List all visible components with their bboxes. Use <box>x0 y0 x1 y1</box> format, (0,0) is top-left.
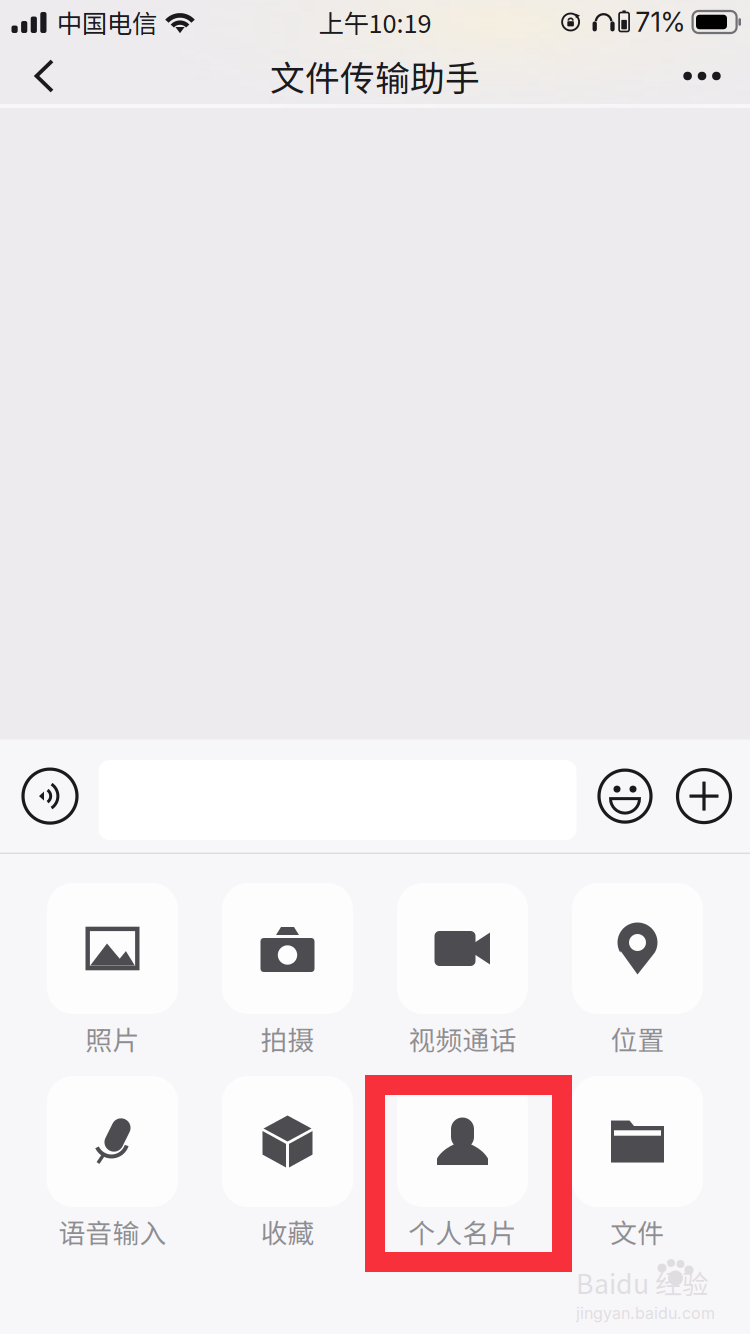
button[interactable]: 位置 <box>550 883 725 1052</box>
button[interactable]: 拍摄 <box>200 883 375 1052</box>
button[interactable]: 语音输入 <box>1 740 76 853</box>
staticText: 拍摄 <box>260 1019 314 1058</box>
staticText: Baidu 经验 <box>576 1263 709 1302</box>
button[interactable]: 文件 <box>550 1076 725 1245</box>
button[interactable]: 照片 <box>25 883 200 1052</box>
staticText: 文件 <box>610 1212 664 1251</box>
staticText: 文件传输助手 <box>270 51 480 101</box>
button[interactable]: 更多 <box>668 48 736 104</box>
staticText: 中国电信 <box>57 4 157 40</box>
staticText: 视频通话 <box>408 1019 516 1058</box>
staticText: 71% <box>636 6 686 38</box>
button[interactable]: 收藏 <box>200 1076 375 1245</box>
button[interactable]: 语音输入 <box>25 1076 200 1245</box>
staticText: 语音输入 <box>58 1212 166 1251</box>
button[interactable]: 返回 <box>11 48 79 104</box>
staticText: 上午10:19 <box>318 4 431 40</box>
staticText: 照片 <box>85 1019 139 1058</box>
button[interactable]: 更多功能 <box>673 740 748 853</box>
staticText: jingyan.baidu.com <box>576 1304 715 1323</box>
staticText: 位置 <box>610 1019 664 1058</box>
button[interactable]: 视频通话 <box>375 883 550 1052</box>
staticText: 收藏 <box>260 1212 314 1251</box>
staticText: 个人名片 <box>408 1212 516 1251</box>
button[interactable]: 表情 <box>598 740 673 853</box>
button[interactable]: 个人名片 <box>375 1076 550 1245</box>
